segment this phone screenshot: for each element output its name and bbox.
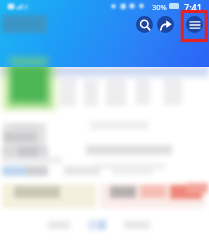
button[interactable]: Menu (186, 16, 203, 33)
staticText: 7:41 (184, 1, 202, 13)
staticText: 30% (152, 2, 167, 12)
button[interactable]: Share (157, 16, 174, 33)
button[interactable]: Search (136, 16, 153, 33)
